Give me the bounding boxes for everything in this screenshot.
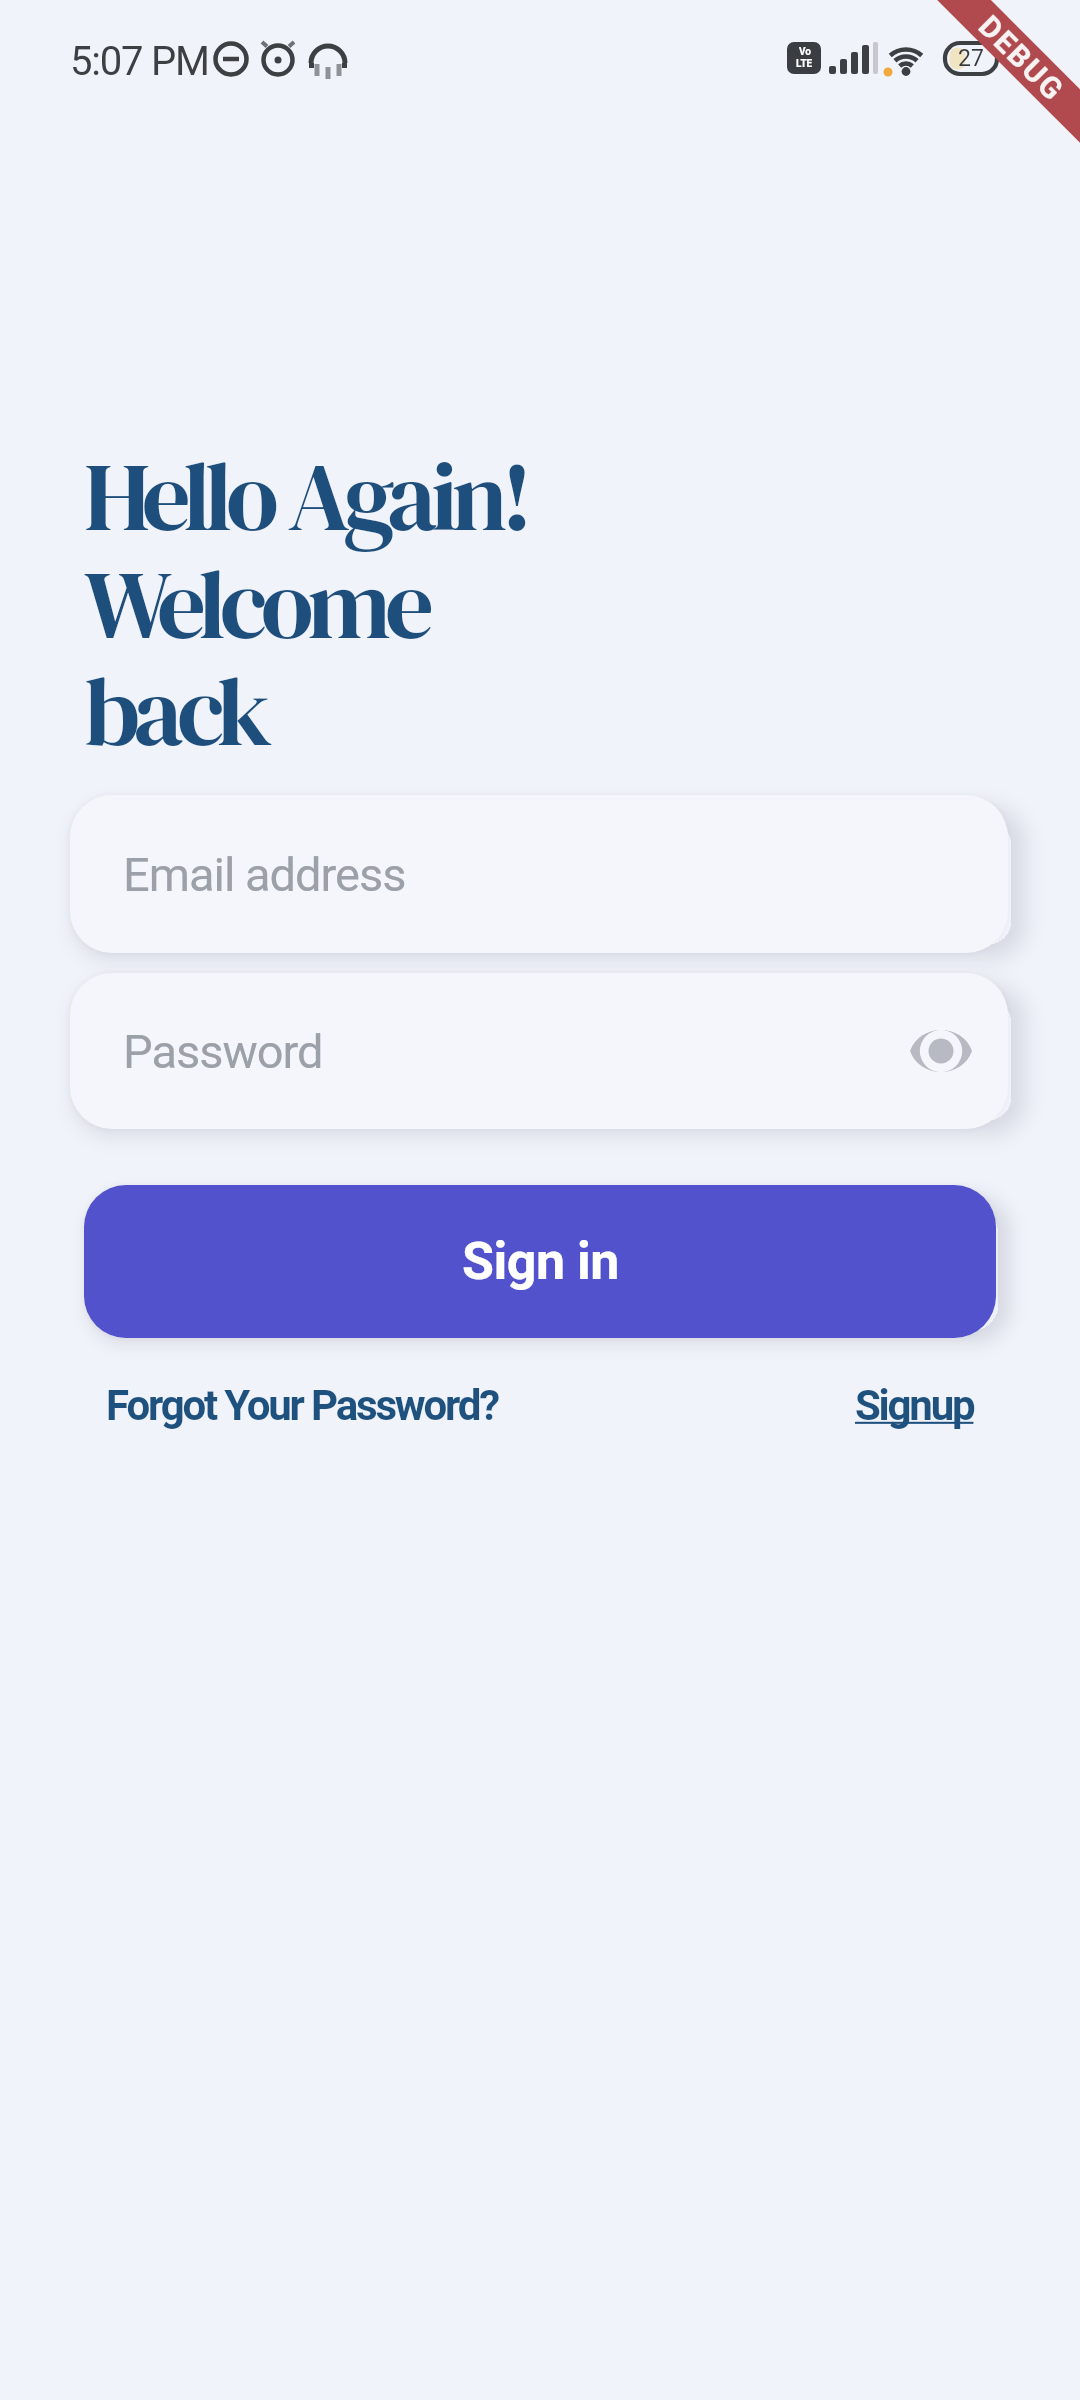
staticText: Forgot Your Password? [106,1381,499,1430]
button[interactable]: Sign in [84,1185,996,1338]
staticText: Email address [123,847,406,902]
button[interactable]: Signup [855,1381,974,1430]
staticText: Signup [855,1381,974,1430]
button[interactable]: Email address [70,795,1008,953]
staticText: Hello Again! Welcome back [84,431,527,777]
button[interactable] [910,1028,972,1074]
button[interactable]: Forgot Your Password? [106,1381,499,1430]
staticText: Sign in [462,1231,619,1292]
staticText: Vo [799,46,811,58]
staticText: DEBUG [972,8,1071,108]
staticText: 27 [958,45,984,72]
button[interactable]: Password [70,973,1008,1129]
staticText: 5:07 PM [70,38,209,85]
staticText: LTE [796,58,813,70]
staticText: Password [123,1024,323,1079]
